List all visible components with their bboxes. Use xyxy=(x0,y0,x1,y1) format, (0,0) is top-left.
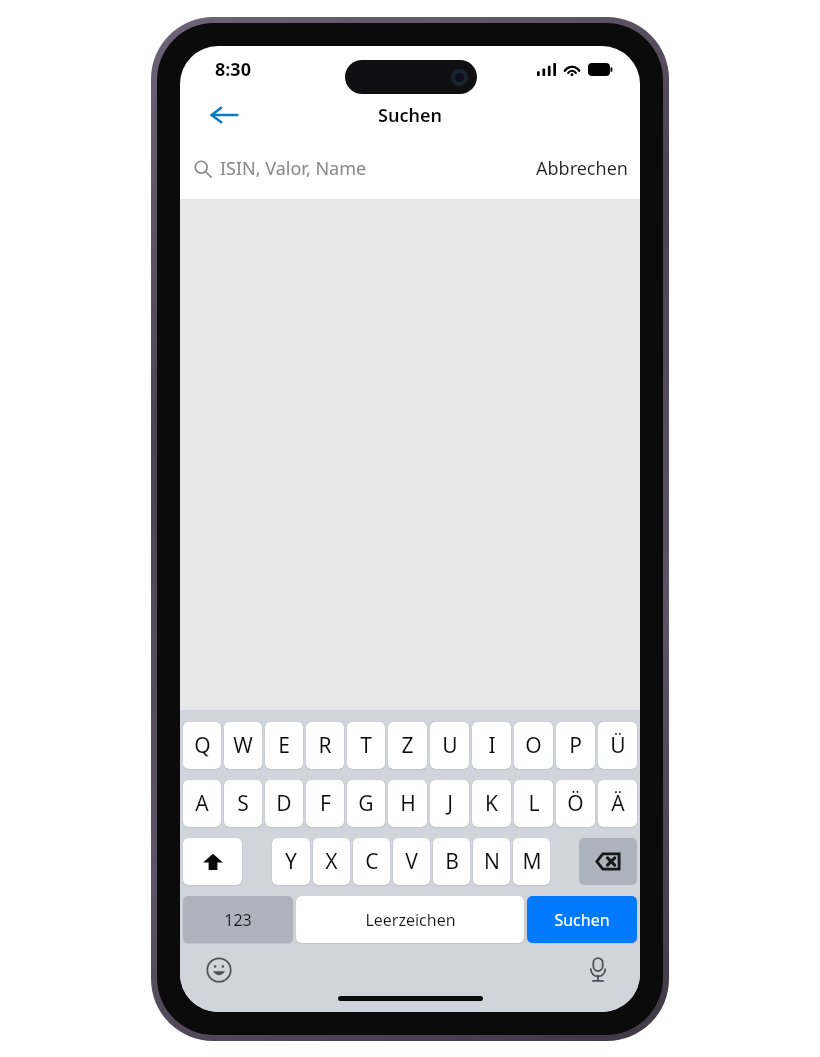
button[interactable]: B xyxy=(433,838,470,885)
staticText: S xyxy=(237,789,249,818)
button[interactable]: U xyxy=(430,722,469,769)
staticText: C xyxy=(365,847,379,876)
staticText: Ü xyxy=(610,731,626,760)
staticText: Y xyxy=(285,847,297,876)
button[interactable]: T xyxy=(347,722,385,769)
staticText: D xyxy=(276,789,292,818)
staticText: G xyxy=(358,789,374,818)
staticText: H xyxy=(400,789,416,818)
button[interactable]: H xyxy=(388,780,427,827)
button[interactable]: Backspace xyxy=(579,838,637,885)
staticText: J xyxy=(447,789,453,818)
button[interactable]: P xyxy=(556,722,595,769)
button[interactable]: ISIN, Valor, Name xyxy=(194,156,367,181)
staticText: Z xyxy=(401,731,414,760)
button[interactable]: Abbrechen xyxy=(530,150,634,187)
staticText: E xyxy=(278,731,290,760)
button[interactable]: Ä xyxy=(598,780,637,827)
button[interactable]: Shift xyxy=(183,838,242,885)
staticText: A xyxy=(195,789,209,818)
staticText: Ä xyxy=(611,789,625,818)
button[interactable]: D xyxy=(265,780,303,827)
button[interactable]: Suchen xyxy=(527,896,637,943)
button[interactable]: Ü xyxy=(598,722,637,769)
staticText: 123 xyxy=(224,909,252,931)
button[interactable]: Emoji xyxy=(199,950,239,990)
staticText: W xyxy=(233,731,253,760)
staticText: P xyxy=(569,731,582,760)
button[interactable]: S xyxy=(224,780,262,827)
staticText: K xyxy=(485,789,498,818)
staticText: Suchen xyxy=(378,103,442,128)
staticText: Leerzeichen xyxy=(365,909,456,931)
button[interactable]: Dictation xyxy=(578,950,618,990)
staticText: Ö xyxy=(567,789,584,818)
staticText: R xyxy=(318,731,332,760)
staticText: M xyxy=(522,847,542,876)
button[interactable]: V xyxy=(393,838,430,885)
button[interactable]: W xyxy=(224,722,262,769)
button[interactable]: A xyxy=(183,780,221,827)
staticText: F xyxy=(320,789,331,818)
staticText: Abbrechen xyxy=(536,156,628,181)
staticText: N xyxy=(484,847,500,876)
button[interactable]: J xyxy=(430,780,469,827)
staticText: V xyxy=(405,847,418,876)
button[interactable]: X xyxy=(313,838,350,885)
button[interactable]: E xyxy=(265,722,303,769)
button[interactable]: 123 xyxy=(183,896,293,943)
staticText: Q xyxy=(194,731,211,760)
staticText: U xyxy=(442,731,458,760)
button[interactable]: M xyxy=(513,838,550,885)
staticText: B xyxy=(445,847,459,876)
staticText: L xyxy=(528,789,540,818)
button[interactable]: Y xyxy=(272,838,310,885)
button[interactable]: G xyxy=(347,780,385,827)
staticText: O xyxy=(525,731,542,760)
button[interactable]: Ö xyxy=(556,780,595,827)
staticText: 8:30 xyxy=(215,57,251,82)
staticText: X xyxy=(325,847,338,876)
button[interactable]: C xyxy=(353,838,390,885)
button[interactable]: R xyxy=(306,722,344,769)
button[interactable]: O xyxy=(514,722,553,769)
button[interactable]: Q xyxy=(183,722,221,769)
button[interactable]: I xyxy=(472,722,511,769)
staticText: I xyxy=(488,731,496,760)
button[interactable]: K xyxy=(472,780,511,827)
button[interactable]: F xyxy=(306,780,344,827)
button[interactable]: Z xyxy=(388,722,427,769)
button[interactable]: N xyxy=(473,838,510,885)
button[interactable]: L xyxy=(514,780,553,827)
staticText: Suchen xyxy=(554,909,610,931)
staticText: T xyxy=(360,731,372,760)
button[interactable]: Back xyxy=(202,93,246,137)
button[interactable]: Leerzeichen xyxy=(296,896,524,943)
staticText: ISIN, Valor, Name xyxy=(220,156,367,181)
